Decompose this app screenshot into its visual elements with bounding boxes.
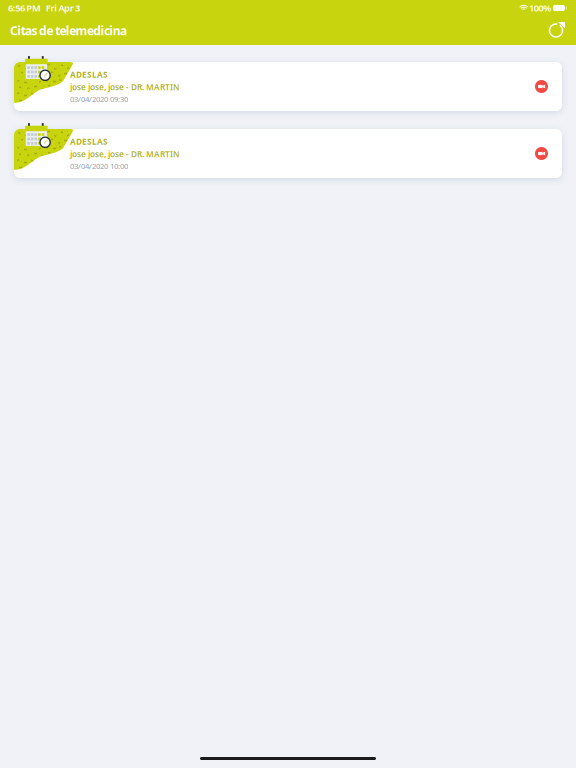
staticText: jose jose, jose - DR. MARTIN <box>70 81 180 93</box>
staticText: Fri Apr 3 <box>41 2 80 14</box>
staticText: ADESLAS <box>70 136 108 147</box>
staticText: jose jose, jose - DR. MARTIN <box>70 148 180 160</box>
staticText: Citas de telemedicina <box>10 22 127 38</box>
staticText: 100% <box>527 2 553 14</box>
staticText: 03/04/2020 09:30 <box>70 94 128 104</box>
staticText: ADESLAS <box>70 69 108 80</box>
button[interactable]: ADESLAS <box>14 62 562 111</box>
button[interactable]: ADESLAS <box>14 129 562 178</box>
staticText: 03/04/2020 10:00 <box>70 161 128 171</box>
button[interactable]: Refresh <box>544 18 568 42</box>
staticText: 6:56 PM <box>8 2 41 14</box>
